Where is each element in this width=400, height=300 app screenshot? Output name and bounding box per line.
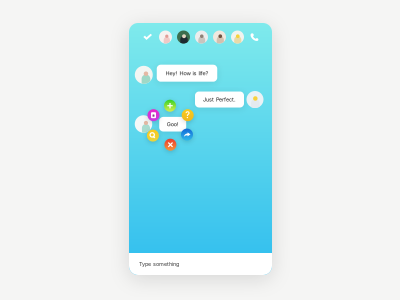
button[interactable]: Add	[164, 100, 176, 112]
button[interactable]: Forward	[181, 129, 193, 141]
staticText: Goo!	[167, 121, 179, 127]
button[interactable]: Type something	[129, 253, 272, 275]
staticText: ?	[185, 110, 190, 120]
button[interactable]: Search	[147, 130, 159, 142]
staticText: Hey! How is life?	[165, 70, 208, 76]
button[interactable]: Delete	[164, 139, 176, 151]
button[interactable]: Call	[249, 31, 260, 42]
staticText: Just Perfect.	[203, 96, 236, 103]
button[interactable]: Lock	[147, 109, 159, 121]
button[interactable]: Done	[141, 31, 154, 42]
staticText: Type something	[139, 261, 179, 267]
button[interactable]: Help	[182, 109, 194, 121]
